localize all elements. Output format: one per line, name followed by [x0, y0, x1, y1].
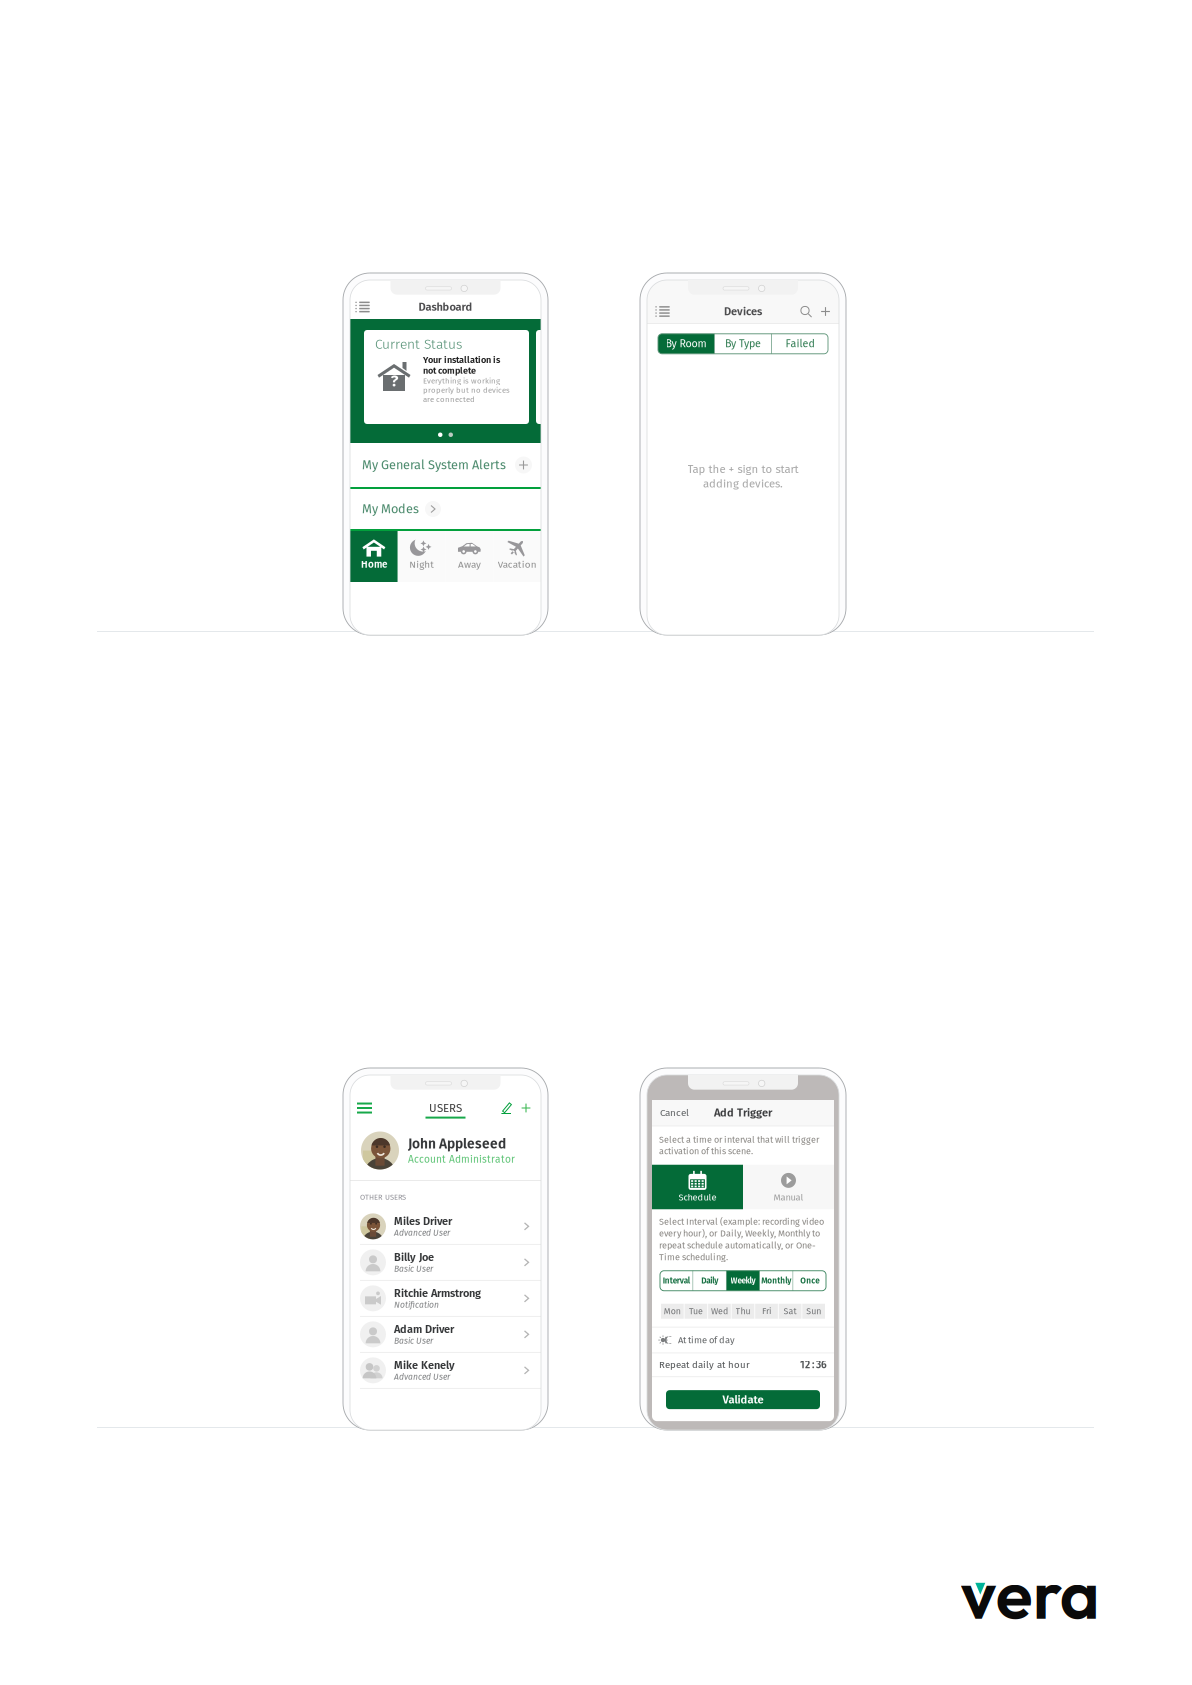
button[interactable]: Miles Driver	[350, 1209, 541, 1244]
button[interactable]: Add device	[816, 302, 835, 321]
staticText: Tap the + sign to start	[687, 462, 798, 476]
button[interactable]: Away	[445, 531, 493, 582]
button[interactable]: Sun	[802, 1304, 825, 1319]
staticText: Sat	[784, 1306, 797, 1317]
staticText: repeat schedule automatically, or One-	[659, 1240, 816, 1251]
button[interactable]: By Room	[658, 334, 714, 354]
staticText: Sun	[806, 1306, 821, 1317]
staticText: John Appleseed	[408, 1136, 506, 1152]
staticText: Advanced User	[394, 1228, 450, 1238]
staticText: Daily	[701, 1276, 718, 1286]
staticText: Select a time or interval that will trig…	[659, 1134, 819, 1145]
staticText: are connected	[423, 395, 475, 404]
button[interactable]: Vacation	[493, 531, 541, 582]
staticText: My Modes	[362, 501, 419, 517]
staticText: Everything is working	[423, 376, 500, 385]
staticText: Fri	[762, 1306, 771, 1317]
button[interactable]: Tue	[684, 1304, 707, 1319]
staticText: My General System Alerts	[362, 457, 506, 473]
button[interactable]: Mike Kenely	[350, 1353, 541, 1388]
staticText: By Type	[725, 337, 761, 350]
staticText: Ritchie Armstrong	[394, 1287, 481, 1300]
staticText: Failed	[785, 337, 814, 350]
button[interactable]: By Type	[715, 334, 771, 354]
button[interactable]: Billy Joe	[350, 1245, 541, 1280]
staticText: Manual	[773, 1192, 803, 1203]
button[interactable]: Failed	[772, 334, 828, 354]
staticText: adding devices.	[703, 477, 783, 490]
staticText: Mon	[664, 1306, 681, 1317]
staticText: activation of this scene.	[659, 1146, 753, 1157]
button[interactable]: Edit	[497, 1098, 516, 1117]
button[interactable]: Menu	[651, 301, 674, 321]
staticText: Weekly	[730, 1276, 755, 1286]
button[interactable]: Home	[350, 531, 398, 582]
staticText: Monthly	[761, 1276, 791, 1286]
staticText: Miles Driver	[394, 1215, 452, 1228]
staticText: Adam Driver	[394, 1323, 454, 1336]
staticText: By Room	[666, 337, 707, 350]
button[interactable]: Night	[398, 531, 446, 582]
button[interactable]: Schedule	[652, 1165, 743, 1209]
staticText: not complete	[423, 365, 476, 376]
button[interactable]: Interval	[660, 1271, 693, 1291]
staticText: Mike Kenely	[394, 1359, 455, 1372]
button[interactable]: Sat	[779, 1304, 801, 1319]
staticText: Current Status	[375, 336, 462, 352]
staticText: Basic User	[394, 1336, 433, 1346]
button[interactable]: Fri	[755, 1304, 778, 1319]
staticText: Time scheduling.	[659, 1252, 728, 1263]
button[interactable]: My Modes	[350, 489, 541, 529]
staticText: Once	[800, 1276, 819, 1286]
button[interactable]: Adam Driver	[350, 1317, 541, 1352]
staticText: Devices	[724, 305, 762, 318]
staticText: every hour), or Daily, Weekly, Monthly t…	[659, 1228, 820, 1239]
button[interactable]: Mon	[661, 1304, 684, 1319]
button[interactable]: Wed	[708, 1304, 731, 1319]
staticText: Cancel	[660, 1107, 689, 1119]
button[interactable]: Search	[796, 301, 816, 321]
staticText: Advanced User	[394, 1372, 450, 1382]
staticText: Vacation	[498, 559, 537, 570]
button[interactable]: Ritchie Armstrong	[350, 1281, 541, 1316]
button[interactable]: Weekly	[727, 1271, 759, 1291]
staticText: Notification	[394, 1300, 439, 1310]
staticText: Home	[361, 559, 387, 570]
staticText: Add Trigger	[714, 1106, 772, 1119]
staticText: Account Administrator	[408, 1153, 515, 1165]
button[interactable]: Cancel	[660, 1107, 689, 1119]
staticText: Thu	[735, 1306, 750, 1317]
staticText: USERS	[429, 1101, 462, 1115]
button[interactable]: Menu	[351, 298, 373, 316]
staticText: vera	[961, 1551, 1100, 1636]
staticText: Dashboard	[418, 300, 472, 314]
button[interactable]: Validate	[666, 1390, 820, 1409]
button[interactable]: Daily	[693, 1271, 726, 1291]
staticText: Schedule	[678, 1192, 716, 1203]
staticText: Basic User	[394, 1264, 433, 1274]
button[interactable]: Monthly	[760, 1271, 793, 1291]
button[interactable]: John Appleseed	[350, 1121, 541, 1180]
staticText: 12 : 36	[800, 1359, 827, 1371]
staticText: Interval	[663, 1276, 690, 1286]
button[interactable]: Once	[793, 1271, 826, 1291]
staticText: Your installation is	[423, 354, 500, 365]
staticText: Billy Joe	[394, 1251, 434, 1264]
button[interactable]: Thu	[732, 1304, 754, 1319]
staticText: OTHER USERS	[360, 1193, 406, 1202]
staticText: Tue	[689, 1306, 703, 1317]
staticText: At time of day	[678, 1334, 735, 1346]
staticText: Repeat daily at hour	[659, 1359, 750, 1371]
button[interactable]: Menu	[353, 1098, 376, 1117]
button[interactable]: My General System Alerts	[350, 443, 541, 487]
button[interactable]: Manual	[743, 1165, 834, 1209]
staticText: Night	[409, 559, 434, 570]
staticText: Validate	[722, 1393, 763, 1406]
staticText: properly but no devices	[423, 385, 510, 395]
staticText: Select Interval (example: recording vide…	[659, 1216, 824, 1227]
staticText: ?	[390, 371, 398, 391]
staticText: Wed	[711, 1306, 728, 1317]
button[interactable]: Add user	[516, 1098, 536, 1118]
staticText: Away	[458, 559, 481, 570]
